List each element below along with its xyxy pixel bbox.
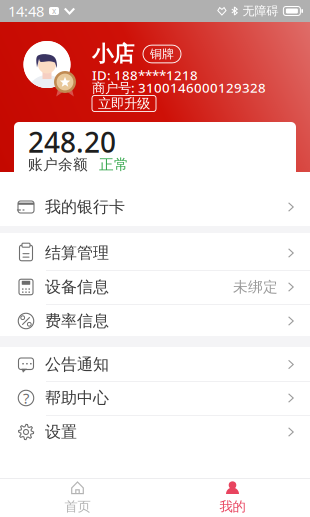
staticText: ID: 188****1218 xyxy=(92,66,198,84)
staticText: 未绑定 xyxy=(233,278,278,296)
staticText: 帮助中心 xyxy=(45,388,109,408)
staticText: 商户号: 3100146000129328 xyxy=(92,79,266,96)
staticText: 首页 xyxy=(64,498,90,515)
staticText: 公告通知 xyxy=(45,355,109,374)
button[interactable]: 费率信息 xyxy=(0,304,310,338)
staticText: 账户余额 xyxy=(28,155,88,173)
button[interactable]: 立即升级 xyxy=(92,95,156,111)
staticText: 费率信息 xyxy=(45,311,109,331)
button[interactable]: 我的银行卡 xyxy=(0,188,310,226)
staticText: 铜牌 xyxy=(150,47,174,61)
staticText: 小店 xyxy=(92,41,134,67)
button[interactable]: ? xyxy=(0,381,310,415)
button[interactable]: 我的 xyxy=(155,478,310,517)
button[interactable]: 结算管理 xyxy=(0,236,310,270)
staticText: 248.20 xyxy=(28,123,116,161)
staticText: x xyxy=(52,6,56,16)
staticText: 我的银行卡 xyxy=(45,197,125,217)
staticText: 结算管理 xyxy=(45,243,109,263)
staticText: 我的 xyxy=(219,498,245,515)
staticText: 设备信息 xyxy=(45,277,109,297)
button[interactable]: 设备信息 xyxy=(0,270,310,304)
staticText: 立即升级 xyxy=(98,95,150,112)
button[interactable]: 公告通知 xyxy=(0,347,310,382)
staticText: 无障碍 xyxy=(242,4,278,18)
staticText: 正常 xyxy=(99,155,129,173)
button[interactable]: 首页 xyxy=(0,478,155,517)
staticText: 14:48 xyxy=(8,1,44,21)
button[interactable]: 设置 xyxy=(0,415,310,449)
staticText: 设置 xyxy=(45,422,77,442)
staticText: ? xyxy=(23,388,29,408)
